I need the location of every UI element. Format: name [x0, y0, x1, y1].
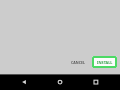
staticText: CANCEL	[71, 60, 86, 65]
button[interactable]: INSTALL	[92, 56, 117, 68]
button[interactable]: Back	[16, 74, 32, 90]
button[interactable]: Recent apps	[88, 74, 104, 90]
staticText: INSTALL	[97, 60, 113, 65]
button[interactable]: Home	[52, 74, 68, 90]
button[interactable]: CANCEL	[68, 56, 88, 69]
